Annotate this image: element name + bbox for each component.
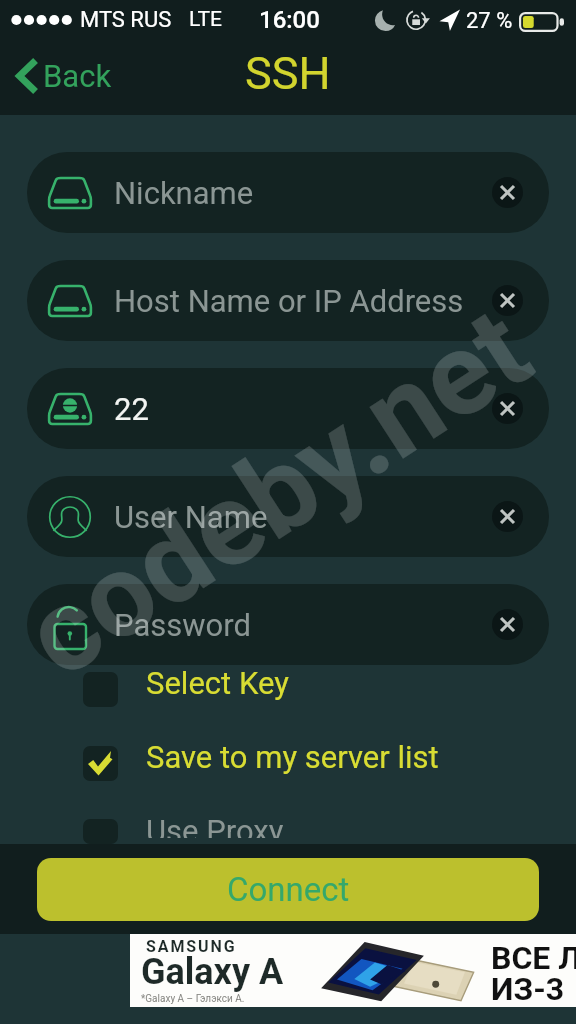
staticText: codeby.net	[2, 280, 554, 704]
button[interactable]: User Name	[27, 476, 549, 557]
button[interactable]: Nickname	[27, 152, 549, 233]
staticText: 22	[114, 391, 149, 427]
staticText: 16:00	[259, 6, 320, 34]
button[interactable]: Samsung Galaxy A advertisement	[130, 934, 576, 1007]
button[interactable]: Clear Host Name or IP Address	[492, 285, 523, 316]
button[interactable]: Clear Password	[492, 609, 523, 640]
staticText: SAMSUNG	[146, 937, 237, 956]
button[interactable]: Clear User Name	[492, 501, 523, 532]
button[interactable]: Clear 22	[492, 393, 523, 424]
staticText: LTE	[189, 7, 222, 32]
staticText: Host Name or IP Address	[114, 283, 464, 319]
staticText: *Galaxy A – Гэлэкси A.	[141, 993, 245, 1005]
button[interactable]: Use Proxy	[0, 819, 576, 844]
button[interactable]: Host Name or IP Address	[27, 260, 549, 341]
staticText: Galaxy A	[141, 951, 284, 993]
staticText: Connect	[227, 870, 350, 909]
staticText: MTS RUS	[80, 7, 172, 33]
staticText: SSH	[245, 47, 331, 100]
staticText: User Name	[114, 499, 268, 535]
button[interactable]: Password	[27, 584, 549, 665]
button[interactable]: Select Key	[0, 671, 576, 707]
staticText: Save to my server list	[146, 739, 439, 775]
staticText: Password	[114, 607, 251, 643]
button[interactable]: Save to my server list	[0, 745, 576, 781]
staticText: Select Key	[146, 665, 289, 701]
staticText: Use Proxy	[146, 813, 284, 838]
staticText: Back	[43, 58, 112, 94]
button[interactable]: Clear Nickname	[492, 177, 523, 208]
button[interactable]: Back	[0, 49, 126, 103]
staticText: 27 %	[466, 8, 513, 34]
button[interactable]: 22	[27, 368, 549, 449]
staticText: ИЗ-3	[491, 970, 565, 1008]
button[interactable]: Connect	[37, 858, 539, 921]
staticText: ВСЕ Л	[491, 939, 576, 977]
staticText: Nickname	[114, 175, 254, 211]
